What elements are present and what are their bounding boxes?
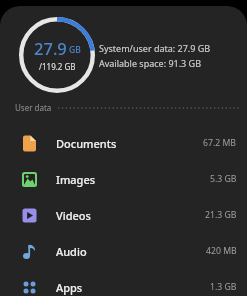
button[interactable]: Images <box>0 161 247 197</box>
staticText: 21.3 GB <box>205 209 237 221</box>
staticText: System/user data: 27.9 GB <box>99 42 211 54</box>
staticText: Documents <box>56 136 117 151</box>
button[interactable]: Apps <box>0 269 247 296</box>
staticText: Available space: 91.3 GB <box>99 57 201 69</box>
staticText: 27.9 <box>34 37 67 59</box>
staticText: GB <box>69 44 81 56</box>
staticText: 5.3 GB <box>210 173 237 185</box>
staticText: 67.2 MB <box>203 137 237 149</box>
staticText: Videos <box>56 208 91 223</box>
staticText: Images <box>56 172 96 187</box>
staticText: 420 MB <box>206 245 237 257</box>
button[interactable]: Audio <box>0 233 247 269</box>
button[interactable]: Videos <box>0 197 247 233</box>
staticText: User data <box>15 102 52 113</box>
staticText: Apps <box>56 280 83 295</box>
staticText: 1.3 GB <box>210 281 237 293</box>
staticText: /119.2 GB <box>39 61 76 72</box>
staticText: Audio <box>56 244 87 259</box>
button[interactable]: Documents <box>0 125 247 161</box>
